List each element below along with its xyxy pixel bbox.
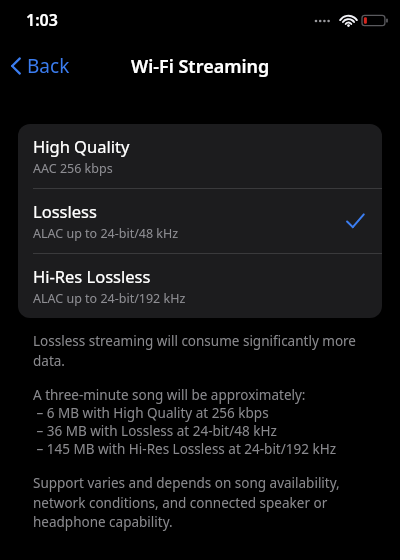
staticText: A three-minute song will be approximatel… — [33, 386, 367, 404]
staticText: ALAC up to 24-bit/192 kHz — [33, 290, 186, 307]
staticText: Back — [27, 53, 70, 79]
staticText: AAC 256 kbps — [33, 160, 113, 177]
staticText: – 6 MB with High Quality at 256 kbps — [33, 404, 367, 422]
staticText: Lossless — [33, 200, 97, 222]
other: Selected — [344, 210, 366, 232]
button[interactable]: Back — [0, 47, 80, 85]
staticText: – 145 MB with Hi-Res Lossless at 24-bit/… — [33, 440, 367, 458]
staticText: Support varies and depends on song avail… — [33, 474, 367, 531]
staticText: High Quality — [33, 135, 130, 157]
button[interactable]: High Quality — [18, 124, 382, 188]
button[interactable]: Hi-Res Lossless — [18, 254, 382, 318]
staticText: Wi-Fi Streaming — [131, 54, 270, 79]
button[interactable]: Lossless — [18, 189, 382, 253]
staticText: ALAC up to 24-bit/48 kHz — [33, 225, 179, 242]
staticText: – 36 MB with Lossless at 24-bit/48 kHz — [33, 422, 367, 440]
staticText: Lossless streaming will consume signific… — [33, 332, 367, 370]
staticText: Hi-Res Lossless — [33, 265, 151, 287]
staticText: 1:03 — [26, 9, 58, 31]
